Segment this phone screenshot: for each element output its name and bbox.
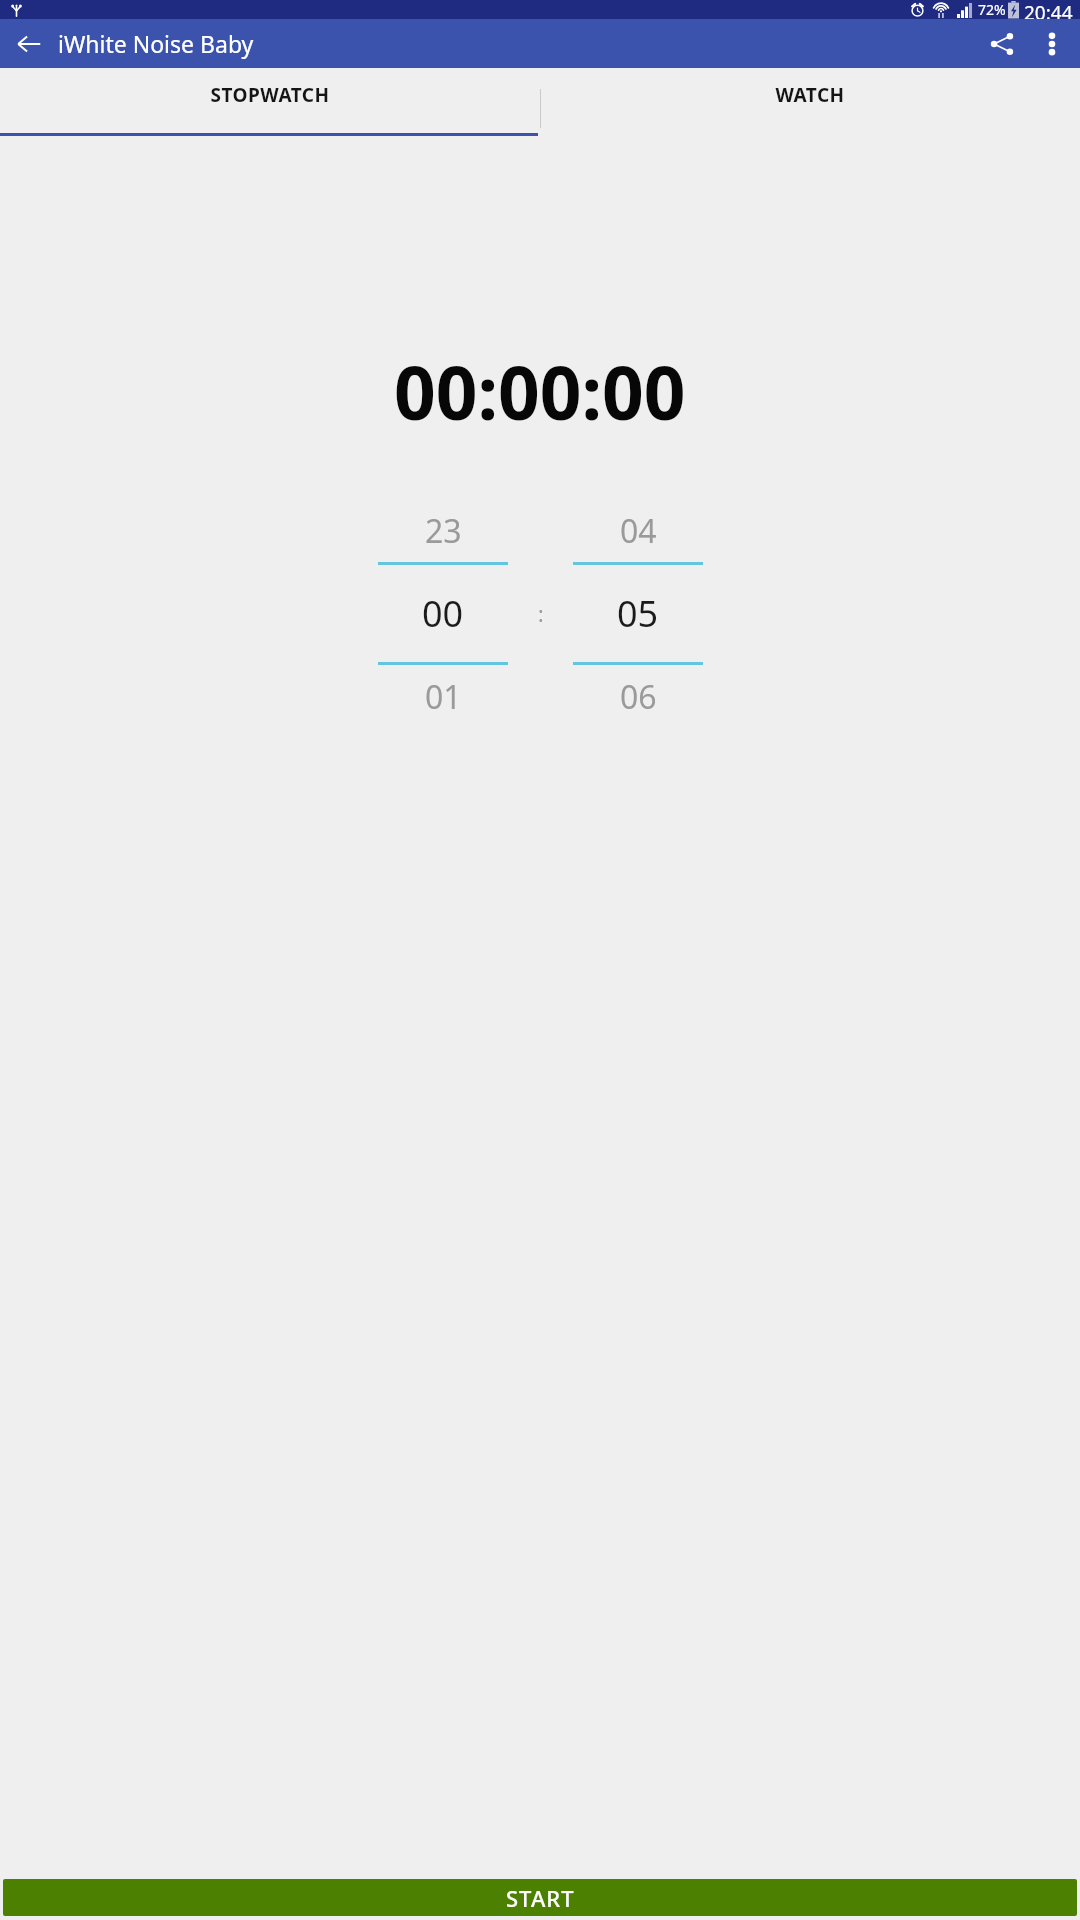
staticText: iWhite Noise Baby — [58, 28, 254, 59]
button[interactable]: 06 — [573, 665, 703, 728]
staticText: : — [538, 600, 544, 629]
button[interactable]: WATCH — [540, 68, 1080, 136]
staticText: 06 — [620, 675, 657, 719]
button[interactable]: 23 — [378, 499, 508, 562]
button[interactable]: 05 — [573, 565, 703, 662]
staticText: 05 — [617, 589, 659, 638]
button[interactable]: 00 — [378, 565, 508, 662]
staticText: 01 — [425, 675, 462, 719]
staticText: 72% — [978, 0, 1006, 19]
staticText: 00 — [422, 589, 464, 638]
staticText: 00:00:00 — [394, 342, 686, 441]
button[interactable]: Back — [5, 20, 53, 68]
button[interactable]: START — [3, 1879, 1077, 1916]
button[interactable]: 01 — [378, 665, 508, 728]
button[interactable]: STOPWATCH — [0, 68, 540, 136]
staticText: WATCH — [775, 82, 845, 108]
button[interactable]: Share — [978, 20, 1026, 68]
staticText: START — [506, 1883, 575, 1913]
staticText: 20:44 — [1024, 0, 1073, 19]
staticText: 23 — [425, 509, 462, 553]
button[interactable]: 04 — [573, 499, 703, 562]
button[interactable]: More options — [1026, 19, 1078, 68]
staticText: STOPWATCH — [210, 82, 330, 108]
staticText: 04 — [620, 509, 657, 553]
